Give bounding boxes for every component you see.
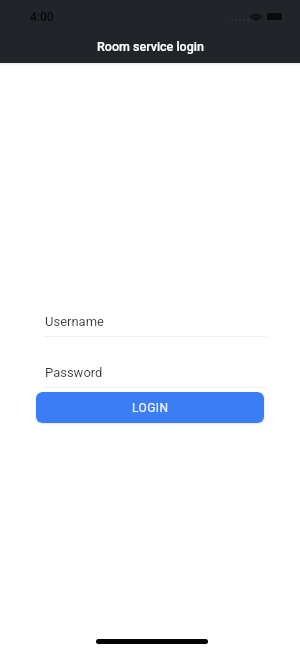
staticText: Room service login: [97, 39, 204, 54]
button[interactable]: LOGIN: [36, 392, 264, 423]
staticText: LOGIN: [132, 401, 169, 415]
other: Home: [96, 639, 208, 644]
button[interactable]: Password: [44, 358, 266, 388]
button[interactable]: Username: [44, 307, 266, 337]
staticText: 4:00: [30, 10, 54, 24]
staticText: Username: [45, 314, 104, 329]
staticText: Password: [45, 365, 103, 380]
